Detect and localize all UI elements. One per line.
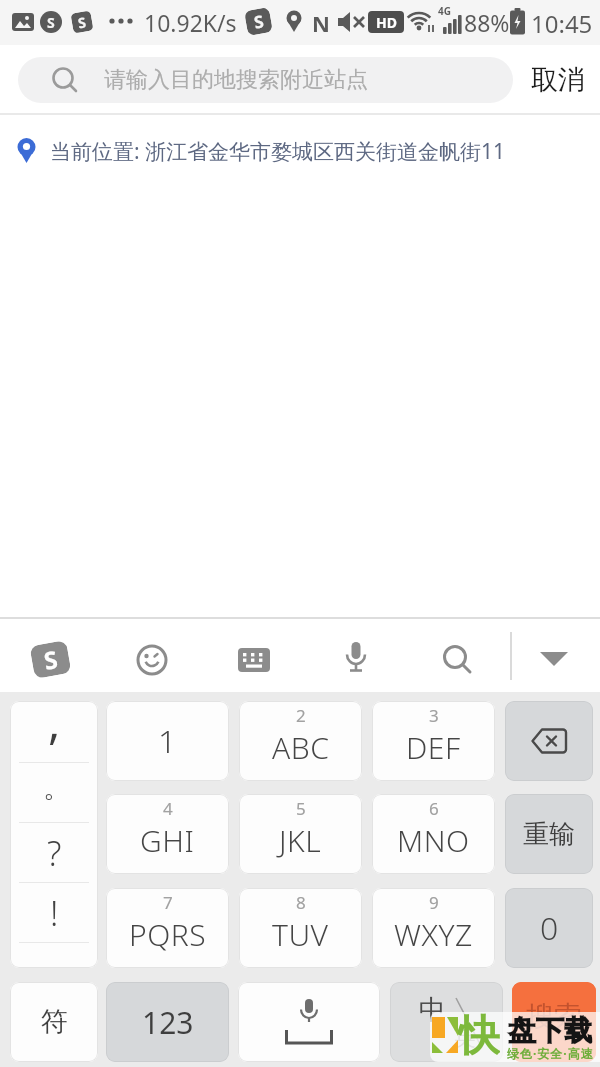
button[interactable]: S xyxy=(29,640,72,679)
staticText: 3 xyxy=(429,704,439,725)
button[interactable]: 中 xyxy=(390,982,503,1062)
staticText: 88% xyxy=(464,7,510,35)
button[interactable] xyxy=(136,644,168,676)
staticText: 10:45 xyxy=(531,7,593,35)
staticText: DEF xyxy=(406,727,461,768)
button[interactable]: 9 xyxy=(372,888,495,968)
button[interactable]: 取消 xyxy=(522,57,594,103)
staticText: 123 xyxy=(142,1002,194,1043)
button[interactable]: 2 xyxy=(239,701,362,781)
staticText: 4G xyxy=(438,4,451,16)
button[interactable]: 符 xyxy=(10,982,98,1062)
staticText: 中 xyxy=(419,993,446,1027)
button[interactable]: 3 xyxy=(372,701,495,781)
staticText: 盘下载 xyxy=(508,1013,592,1048)
staticText: 5 xyxy=(296,797,306,818)
button[interactable]: ? xyxy=(10,823,98,882)
staticText: S xyxy=(252,9,266,34)
staticText: WXYZ xyxy=(394,914,473,955)
staticText: N xyxy=(312,8,330,36)
button[interactable]: 1 xyxy=(106,701,229,781)
button[interactable] xyxy=(538,650,572,670)
button[interactable]: 6 xyxy=(372,794,495,874)
button[interactable] xyxy=(442,644,474,676)
staticText: 快 xyxy=(458,1010,500,1058)
staticText: ABC xyxy=(272,727,330,768)
button[interactable]: 4 xyxy=(106,794,229,874)
staticText: 2 xyxy=(296,704,306,725)
staticText: TUV xyxy=(272,914,329,955)
button[interactable] xyxy=(505,701,593,781)
staticText: S xyxy=(41,642,61,677)
staticText: 取消 xyxy=(531,63,585,97)
button[interactable]: 7 xyxy=(106,888,229,968)
staticText: 7 xyxy=(163,891,173,912)
staticText: 当前位置: 浙江省金华市婺城区西关街道金帆街11 xyxy=(50,137,506,166)
staticText: JKL xyxy=(279,820,322,861)
staticText: 8 xyxy=(296,891,306,912)
button[interactable] xyxy=(344,642,368,678)
button[interactable]: 请输入目的地搜索附近站点 xyxy=(18,57,513,103)
staticText: 请输入目的地搜索附近站点 xyxy=(104,66,368,94)
staticText: ! xyxy=(50,890,59,936)
staticText: 符 xyxy=(41,1005,68,1039)
button[interactable]: 5 xyxy=(239,794,362,874)
button[interactable]: 0 xyxy=(505,888,593,968)
button[interactable]: 8 xyxy=(239,888,362,968)
staticText: 。 xyxy=(43,770,71,805)
staticText: 英 xyxy=(454,1024,476,1052)
button[interactable] xyxy=(238,982,380,1062)
staticText: PQRS xyxy=(129,914,207,955)
staticText: , xyxy=(48,701,61,751)
button[interactable]: 123 xyxy=(106,982,229,1062)
staticText: 6 xyxy=(429,797,439,818)
staticText: 9 xyxy=(429,891,439,912)
staticText: 10.92K/s xyxy=(144,7,237,35)
staticText: 1 xyxy=(158,719,177,763)
button[interactable]: 。 xyxy=(10,763,98,822)
button[interactable]: 重输 xyxy=(505,794,593,874)
staticText: 0 xyxy=(540,906,559,950)
button[interactable]: 当前位置: 浙江省金华市婺城区西关街道金帆街11 xyxy=(17,136,506,166)
staticText: MNO xyxy=(397,820,470,861)
staticText: ? xyxy=(47,830,62,876)
staticText: 绿色·安全·高速 xyxy=(507,1045,594,1060)
button[interactable]: 搜索 xyxy=(512,982,596,1062)
button[interactable]: , xyxy=(10,701,98,762)
staticText: 搜索 xyxy=(526,999,582,1034)
button[interactable]: ! xyxy=(10,883,98,942)
staticText: HD xyxy=(376,13,397,32)
staticText: GHI xyxy=(140,820,195,861)
button[interactable] xyxy=(238,648,270,672)
staticText: S xyxy=(76,12,88,32)
staticText: 4 xyxy=(163,797,173,818)
staticText: S xyxy=(47,13,55,32)
staticText: 重输 xyxy=(523,818,575,851)
